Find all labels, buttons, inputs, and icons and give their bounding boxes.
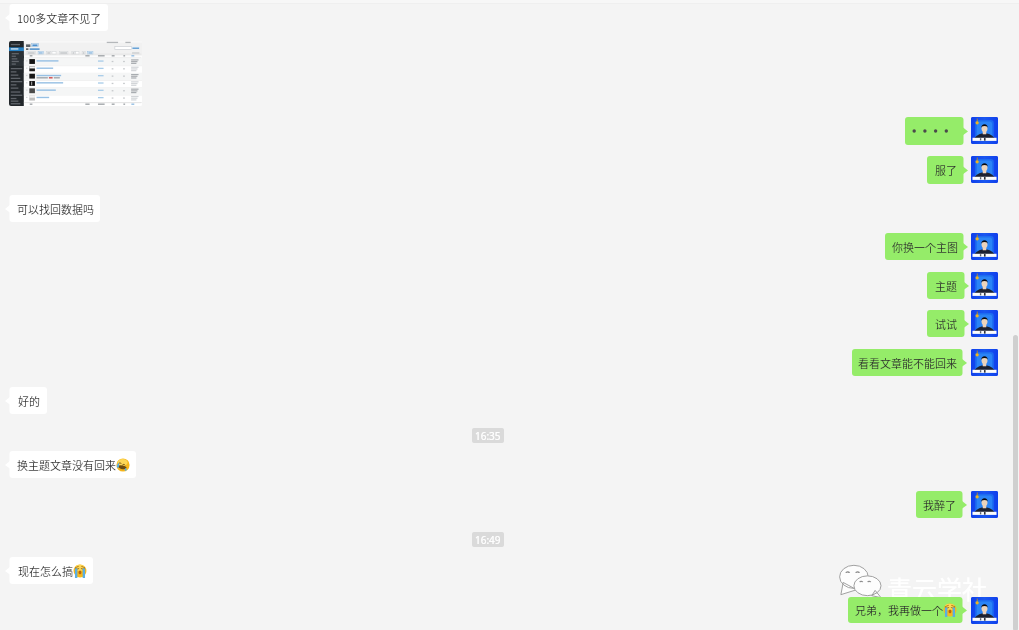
button[interactable]: 现在怎么搞 (6, 557, 93, 584)
staticText: 服了 (935, 162, 957, 178)
button[interactable]: Contact avatar (971, 156, 998, 183)
staticText: 看看文章能不能回来 (858, 355, 957, 371)
staticText: 我醉了 (923, 497, 956, 513)
button[interactable]: 看看文章能不能回来 (852, 349, 966, 376)
button[interactable]: Contact avatar (971, 491, 998, 518)
button[interactable]: 好的 (6, 387, 47, 414)
staticText: 可以找回数据吗 (17, 201, 94, 217)
button[interactable]: 试试 (927, 310, 968, 337)
button[interactable]: Image attachment (9, 41, 142, 106)
button[interactable]: Contact avatar (971, 117, 998, 144)
button[interactable]: 服了 (927, 156, 967, 184)
staticText: 16:35 (475, 429, 501, 443)
button[interactable]: Contact avatar (971, 272, 998, 299)
staticText: 换主题文章没有回来 (17, 457, 116, 473)
button[interactable]: 换主题文章没有回来 (6, 451, 136, 478)
button[interactable] (905, 117, 967, 145)
button[interactable]: Contact avatar (971, 310, 998, 337)
button[interactable]: Contact avatar (971, 349, 998, 376)
staticText: 现在怎么搞 (18, 563, 73, 579)
staticText: 16:49 (475, 533, 501, 547)
staticText: 好的 (18, 393, 40, 409)
button[interactable]: 100多文章不见了 (6, 4, 108, 31)
button[interactable]: 你换一个主图 (885, 233, 967, 260)
staticText: 100多文章不见了 (17, 10, 102, 26)
staticText: 主题 (935, 278, 957, 294)
button[interactable]: 我醉了 (916, 491, 966, 518)
staticText: 兄弟，我再做一个 (855, 602, 943, 618)
staticText: 青云学社 (887, 570, 988, 606)
button[interactable]: 兄弟，我再做一个 (848, 597, 966, 623)
staticText: 你换一个主图 (892, 239, 958, 255)
button[interactable]: 可以找回数据吗 (6, 195, 100, 222)
button[interactable]: 主题 (927, 272, 968, 299)
staticText: 试试 (935, 316, 957, 332)
button[interactable]: Contact avatar (971, 233, 998, 260)
button[interactable]: Contact avatar (971, 597, 998, 624)
